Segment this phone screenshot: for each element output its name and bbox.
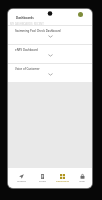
- staticText: Voice of Customer: [15, 67, 40, 71]
- button[interactable]: Voice of Customer: [8, 63, 92, 82]
- staticText: Swimming Pool Check Dashboard: [15, 29, 61, 33]
- staticText: MY DASHBOARDS RECENT: [10, 22, 44, 25]
- staticText: Forms: [39, 180, 46, 183]
- button[interactable]: eNPS Dashboard: [8, 44, 92, 63]
- button[interactable]: Profile: [78, 12, 83, 17]
- staticText: Dashboards: [56, 180, 69, 183]
- button[interactable]: Shop: [72, 168, 92, 188]
- staticText: Dashboards: [16, 16, 34, 20]
- button[interactable]: Projects: [11, 168, 32, 188]
- button[interactable]: Swimming Pool Check Dashboard: [8, 25, 92, 44]
- staticText: Shop: [79, 180, 85, 183]
- staticText: eNPS Dashboard: [15, 48, 38, 52]
- button[interactable]: Dashboards: [52, 168, 72, 188]
- button[interactable]: Forms: [32, 168, 52, 188]
- staticText: Projects: [17, 180, 26, 183]
